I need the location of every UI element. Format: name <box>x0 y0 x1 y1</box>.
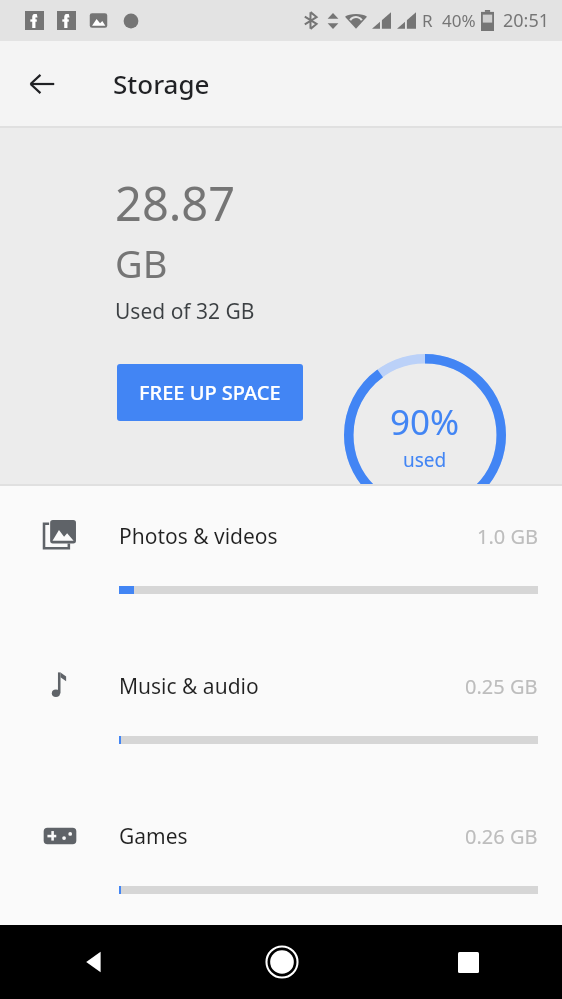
staticText: 0.26 GB <box>465 823 538 850</box>
staticText: R <box>422 9 433 32</box>
button[interactable]: Recents <box>375 925 562 999</box>
staticText: Used of 32 GB <box>115 297 255 326</box>
button[interactable]: Back <box>14 56 70 112</box>
button[interactable]: Back <box>0 925 188 999</box>
staticText: used <box>403 447 447 473</box>
button[interactable]: Music & audio <box>0 636 562 786</box>
staticText: 40% <box>442 9 476 32</box>
staticText: Storage <box>113 66 210 101</box>
button[interactable]: FREE UP SPACE <box>117 364 303 421</box>
staticText: Photos & videos <box>119 522 477 551</box>
staticText: FREE UP SPACE <box>139 379 281 406</box>
button[interactable]: Games <box>0 786 562 925</box>
staticText: 20:51 <box>503 8 550 33</box>
staticText: Games <box>119 822 465 851</box>
button[interactable]: Photos & videos <box>0 486 562 636</box>
staticText: 0.25 GB <box>465 673 538 700</box>
button[interactable]: Home <box>188 925 375 999</box>
staticText: 90% <box>390 398 460 446</box>
staticText: 28.87 <box>115 171 236 235</box>
staticText: GB <box>115 237 168 289</box>
staticText: Music & audio <box>119 672 465 701</box>
staticText: 1.0 GB <box>477 523 538 550</box>
